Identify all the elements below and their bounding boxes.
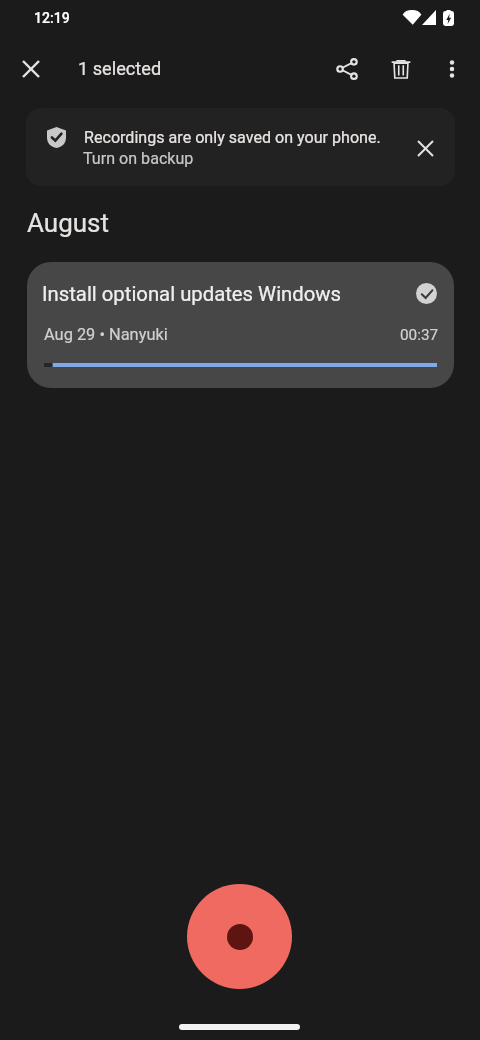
button[interactable]: Close selection	[7, 45, 55, 93]
button[interactable]: Start recording	[187, 884, 292, 989]
staticText: Turn on backup	[83, 149, 194, 168]
staticText: August	[27, 208, 110, 238]
button[interactable]: Delete	[377, 45, 425, 93]
staticText: Install optional updates Windows	[42, 282, 342, 306]
staticText: 00:37	[400, 326, 439, 344]
staticText: Recordings are only saved on your phone.	[84, 128, 381, 147]
staticText: 1 selected	[78, 58, 162, 79]
staticText: 12:19	[34, 10, 70, 27]
staticText: Aug 29 • Nanyuki	[44, 325, 168, 344]
button[interactable]: Recordings are only saved on your phone.	[26, 108, 455, 186]
button[interactable]: Share	[323, 45, 371, 93]
button[interactable]: Install optional updates Windows	[27, 262, 454, 388]
button[interactable]: Dismiss	[408, 131, 442, 165]
button[interactable]: More options	[427, 45, 475, 93]
